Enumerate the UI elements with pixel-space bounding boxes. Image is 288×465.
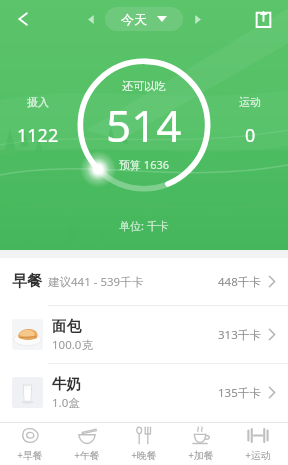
- staticText: 预算 1636: [119, 157, 170, 172]
- button[interactable]: +加餐: [174, 423, 228, 465]
- staticText: 448千卡: [218, 274, 261, 290]
- staticText: 今天: [121, 11, 147, 27]
- button[interactable]: Back: [8, 3, 40, 35]
- staticText: 100.0克: [52, 337, 93, 353]
- staticText: 135千卡: [218, 385, 261, 401]
- staticText: +加餐: [188, 448, 214, 462]
- staticText: +午餐: [74, 448, 100, 462]
- button[interactable]: +晚餐: [117, 423, 171, 465]
- button[interactable]: 面包: [0, 306, 288, 363]
- staticText: 建议441 - 539千卡: [48, 274, 144, 290]
- button[interactable]: 牛奶: [0, 364, 288, 421]
- staticText: 313千卡: [218, 327, 261, 343]
- staticText: 面包: [52, 317, 81, 335]
- staticText: 牛奶: [52, 375, 81, 393]
- staticText: +晚餐: [131, 448, 157, 462]
- staticText: 1.0盒: [52, 395, 80, 411]
- button[interactable]: 今天: [105, 7, 183, 31]
- staticText: 摄入: [27, 95, 49, 109]
- staticText: 运动: [239, 95, 261, 109]
- button[interactable]: +运动: [231, 423, 285, 465]
- button[interactable]: Next day: [187, 9, 207, 29]
- button[interactable]: 早餐: [0, 258, 288, 305]
- button[interactable]: +午餐: [60, 423, 114, 465]
- button[interactable]: Previous day: [81, 9, 101, 29]
- staticText: 单位: 千卡: [119, 218, 169, 233]
- button[interactable]: +早餐: [3, 423, 57, 465]
- staticText: 0: [245, 123, 256, 148]
- staticText: 早餐: [12, 272, 42, 291]
- staticText: +运动: [245, 448, 271, 462]
- button[interactable]: Share: [248, 4, 278, 34]
- staticText: 1122: [17, 123, 59, 148]
- staticText: 514: [106, 95, 182, 155]
- staticText: 还可以吃: [122, 79, 166, 93]
- staticText: +早餐: [17, 448, 43, 462]
